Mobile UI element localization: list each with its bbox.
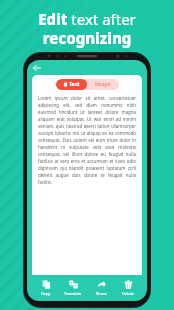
staticText: Edit text after recognizing <box>38 9 136 48</box>
button[interactable]: Share <box>88 275 114 301</box>
button[interactable]: Translate <box>60 275 86 301</box>
button[interactable]: Copy <box>33 275 59 301</box>
staticText: Image <box>95 81 111 88</box>
staticText: Text <box>69 81 80 88</box>
button[interactable]: Delete <box>115 275 141 301</box>
staticText: Copy <box>41 291 51 296</box>
staticText: Delete <box>122 291 135 296</box>
staticText: Lorem ipsum dolor sit amet, consectetuer… <box>38 95 136 185</box>
button[interactable]: Back <box>31 62 43 74</box>
button[interactable]: Image <box>87 79 119 90</box>
staticText: Translate <box>64 291 82 296</box>
button[interactable]: Text <box>56 79 87 90</box>
staticText: Share <box>96 291 107 296</box>
